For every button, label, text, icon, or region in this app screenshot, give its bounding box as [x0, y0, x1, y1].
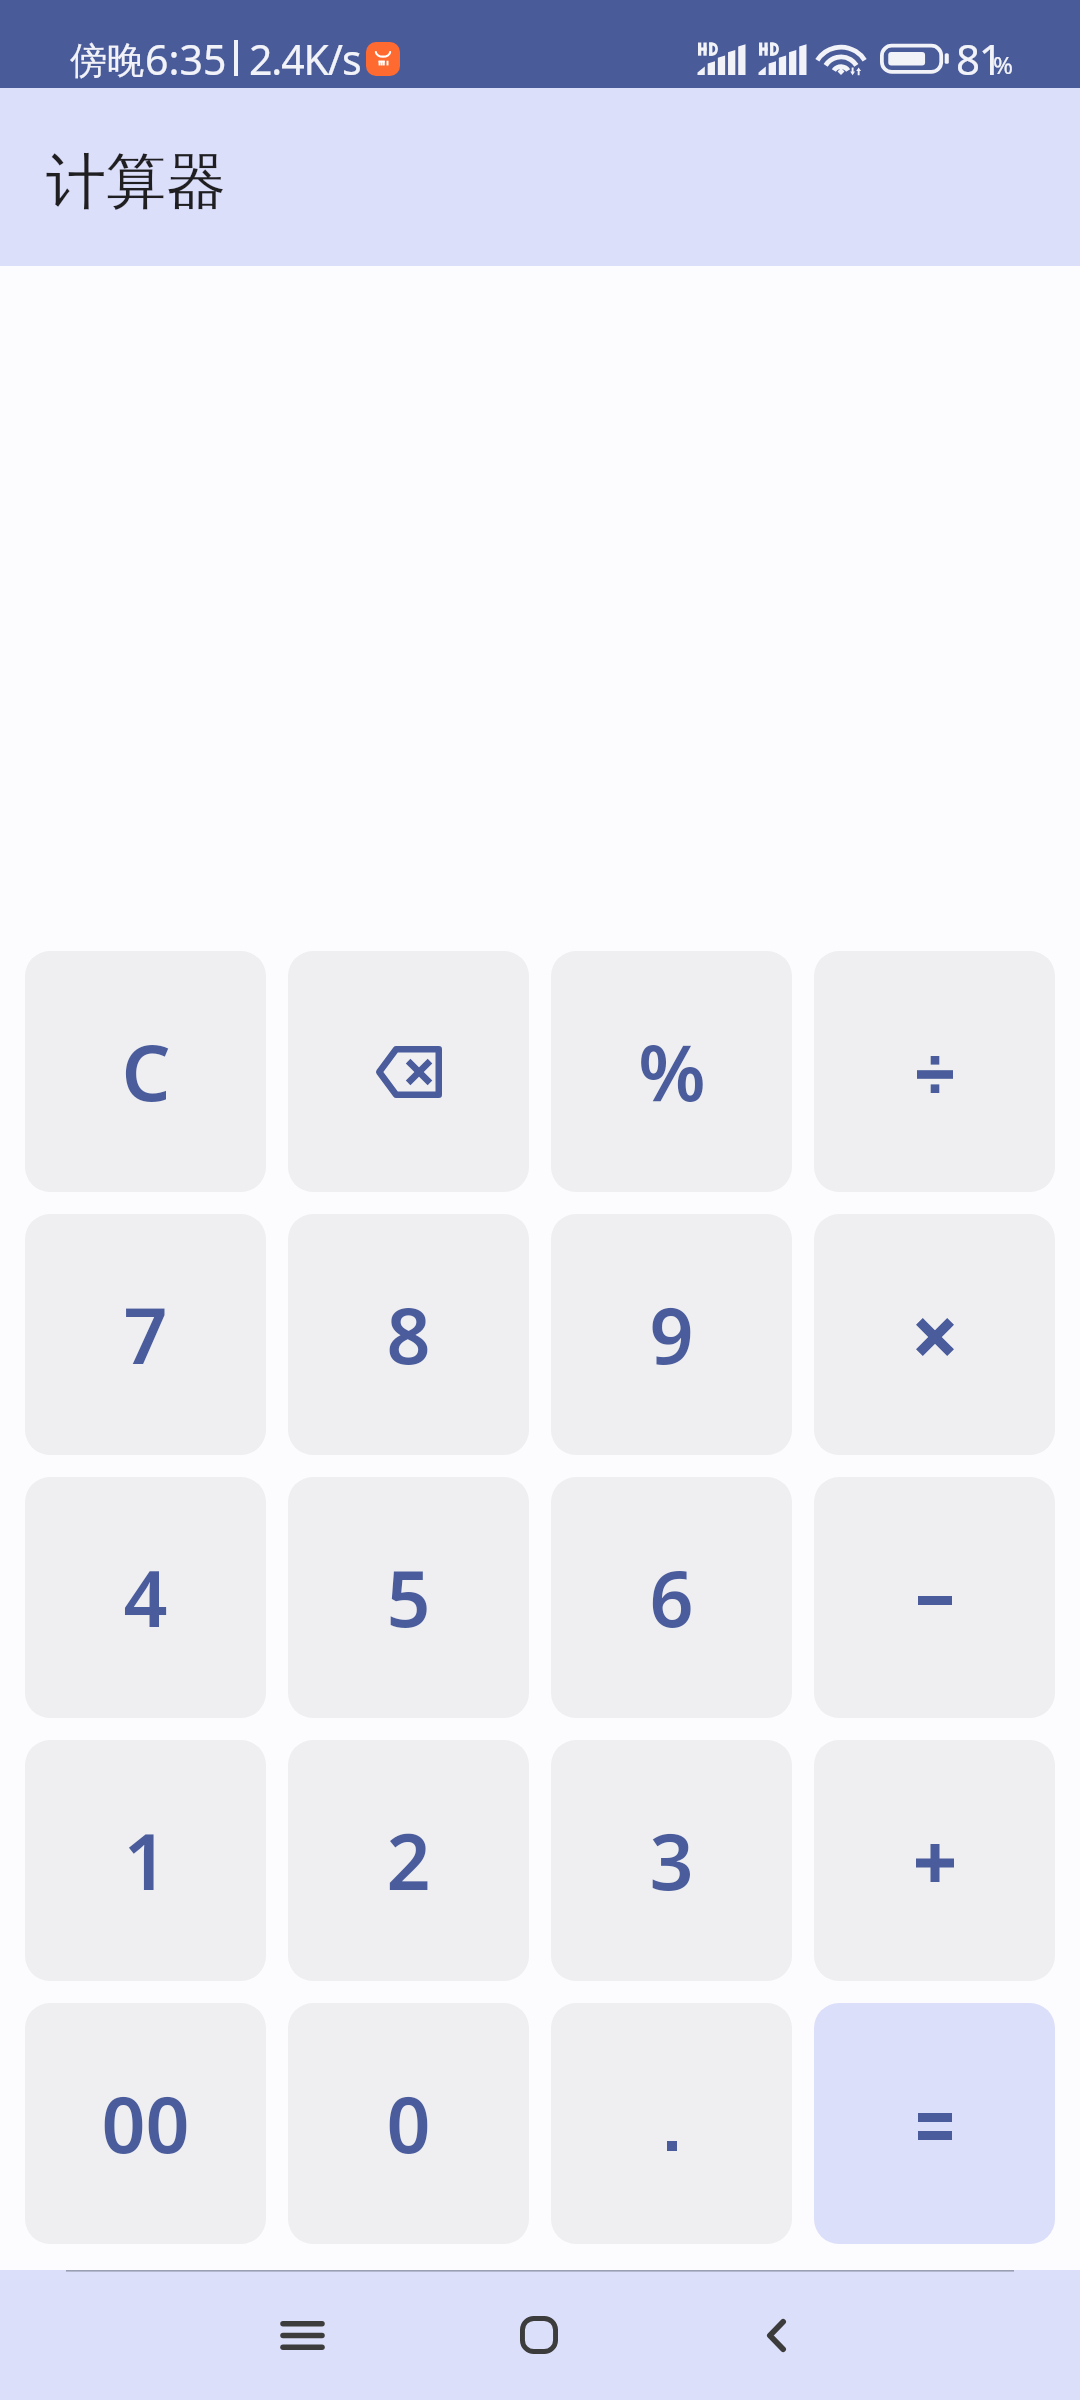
- button[interactable]: 7: [25, 1214, 266, 1455]
- staticText: 1: [123, 1808, 168, 1913]
- button[interactable]: 9: [551, 1214, 792, 1455]
- staticText: 81: [956, 30, 1002, 87]
- staticText: 计算器: [46, 144, 226, 220]
- button[interactable]: 1: [25, 1740, 266, 1981]
- button[interactable]: C: [25, 951, 266, 1192]
- button[interactable]: Backspace: [288, 951, 529, 1192]
- button[interactable]: Home: [474, 2270, 604, 2400]
- staticText: 4: [123, 1545, 168, 1650]
- button[interactable]: 00: [25, 2003, 266, 2244]
- button[interactable]: 6: [551, 1477, 792, 1718]
- button[interactable]: Divide: [814, 951, 1055, 1192]
- staticText: 6: [649, 1545, 694, 1650]
- button[interactable]: 4: [25, 1477, 266, 1718]
- staticText: 2: [386, 1808, 431, 1913]
- button[interactable]: Plus: [814, 1740, 1055, 1981]
- button[interactable]: 2: [288, 1740, 529, 1981]
- staticText: 3: [649, 1808, 694, 1913]
- staticText: %: [993, 48, 1013, 81]
- staticText: C: [121, 1019, 171, 1124]
- button[interactable]: Multiply: [814, 1214, 1055, 1455]
- button[interactable]: Equals: [814, 2003, 1055, 2244]
- staticText: 0: [386, 2071, 431, 2176]
- staticText: %: [638, 1019, 706, 1124]
- button[interactable]: Back: [711, 2270, 841, 2400]
- staticText: 2.4K/s: [249, 31, 361, 87]
- staticText: 6:35: [145, 31, 227, 87]
- button[interactable]: 0: [288, 2003, 529, 2244]
- button[interactable]: Minus: [814, 1477, 1055, 1718]
- button[interactable]: %: [551, 951, 792, 1192]
- staticText: 9: [649, 1282, 694, 1387]
- staticText: 8: [386, 1282, 431, 1387]
- button[interactable]: Recent apps: [237, 2270, 367, 2400]
- button[interactable]: 5: [288, 1477, 529, 1718]
- staticText: 5: [386, 1545, 431, 1650]
- button[interactable]: Decimal point: [551, 2003, 792, 2244]
- button[interactable]: 3: [551, 1740, 792, 1981]
- staticText: 7: [123, 1282, 168, 1387]
- staticText: 傍晚: [70, 37, 144, 84]
- staticText: 00: [101, 2071, 190, 2176]
- button[interactable]: 8: [288, 1214, 529, 1455]
